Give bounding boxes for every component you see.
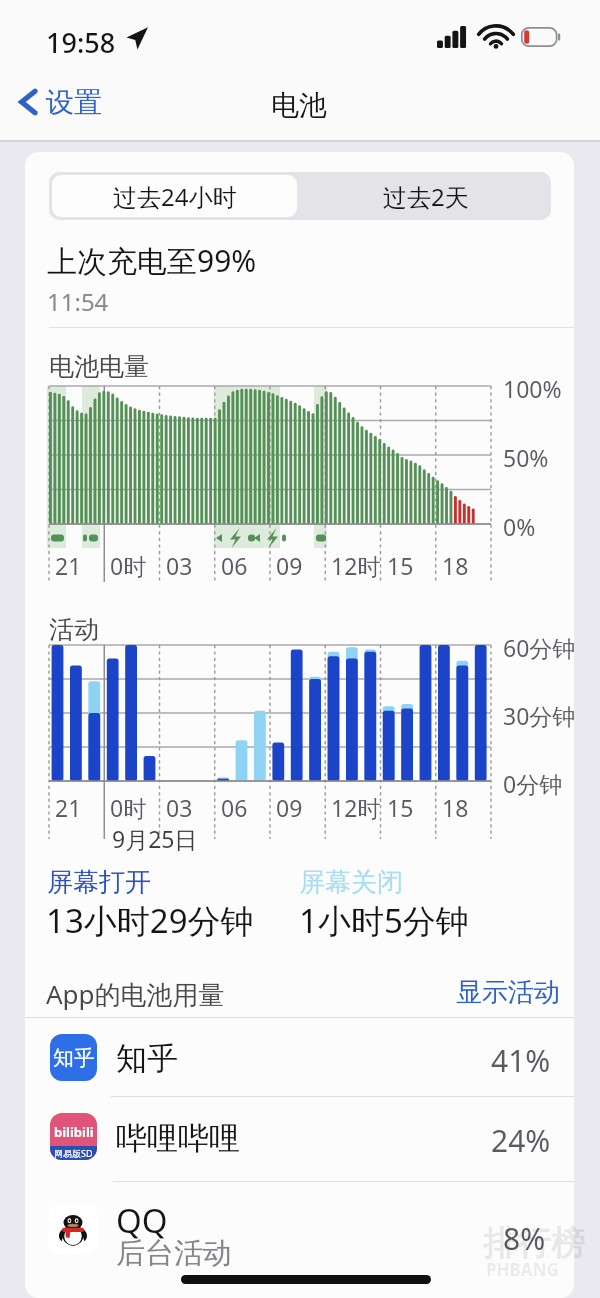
- button[interactable]: 过去2天: [300, 172, 551, 220]
- staticText: QQ: [116, 1198, 168, 1243]
- staticText: 100%: [503, 373, 562, 404]
- button[interactable]: 知乎: [25, 1018, 574, 1096]
- staticText: 后台活动: [116, 1235, 232, 1272]
- staticText: 12时: [331, 550, 381, 581]
- staticText: 30分钟: [503, 700, 576, 731]
- staticText: 屏幕关闭: [299, 866, 403, 899]
- staticText: 电池: [271, 88, 327, 123]
- staticText: 屏幕打开: [47, 866, 151, 899]
- staticText: 11:54: [47, 285, 109, 318]
- button[interactable]: 设置: [18, 80, 102, 124]
- staticText: 1小时5分钟: [299, 898, 469, 943]
- staticText: 9月25日: [112, 823, 198, 854]
- button[interactable]: 显示活动: [452, 972, 564, 1013]
- staticText: 知乎: [53, 1045, 95, 1071]
- staticText: 13小时29分钟: [46, 898, 254, 943]
- staticText: 0时: [110, 792, 147, 823]
- staticText: 上次充电至99%: [47, 240, 257, 281]
- staticText: 电池电量: [49, 351, 149, 382]
- staticText: 41%: [491, 1040, 551, 1081]
- staticText: PHBANG: [486, 1258, 559, 1281]
- staticText: 0时: [110, 550, 147, 581]
- staticText: 09: [276, 792, 303, 823]
- staticText: 0分钟: [503, 768, 563, 799]
- staticText: 60分钟: [503, 632, 576, 663]
- staticText: 活动: [49, 614, 99, 645]
- staticText: 知乎: [116, 1039, 178, 1078]
- staticText: 显示活动: [456, 976, 560, 1009]
- staticText: 09: [276, 550, 303, 581]
- other: Location: [126, 26, 148, 50]
- staticText: 03: [166, 550, 193, 581]
- staticText: 过去2天: [383, 180, 469, 213]
- button[interactable]: QQ: [25, 1182, 574, 1282]
- staticText: 0%: [503, 511, 536, 542]
- staticText: 18: [442, 792, 469, 823]
- staticText: bilibili: [54, 1123, 94, 1141]
- staticText: 50%: [503, 442, 549, 473]
- staticText: 15: [387, 792, 414, 823]
- button[interactable]: bilibili: [25, 1097, 574, 1181]
- staticText: 21: [55, 792, 82, 823]
- staticText: 排行榜: [483, 1222, 585, 1265]
- staticText: 15: [387, 550, 414, 581]
- staticText: 过去24小时: [113, 180, 237, 213]
- staticText: 03: [166, 792, 193, 823]
- staticText: 06: [221, 792, 248, 823]
- staticText: 8%: [503, 1218, 546, 1259]
- staticText: 设置: [46, 85, 102, 120]
- staticText: 21: [55, 550, 82, 581]
- staticText: 网易版SD: [54, 1147, 93, 1159]
- staticText: 24%: [491, 1120, 551, 1161]
- staticText: 哔哩哔哩: [116, 1119, 240, 1158]
- staticText: 18: [442, 550, 469, 581]
- staticText: App的电池用量: [46, 976, 225, 1012]
- staticText: 19:58: [46, 24, 116, 61]
- staticText: 12时: [331, 792, 381, 823]
- button[interactable]: 过去24小时: [52, 175, 297, 217]
- staticText: 06: [221, 550, 248, 581]
